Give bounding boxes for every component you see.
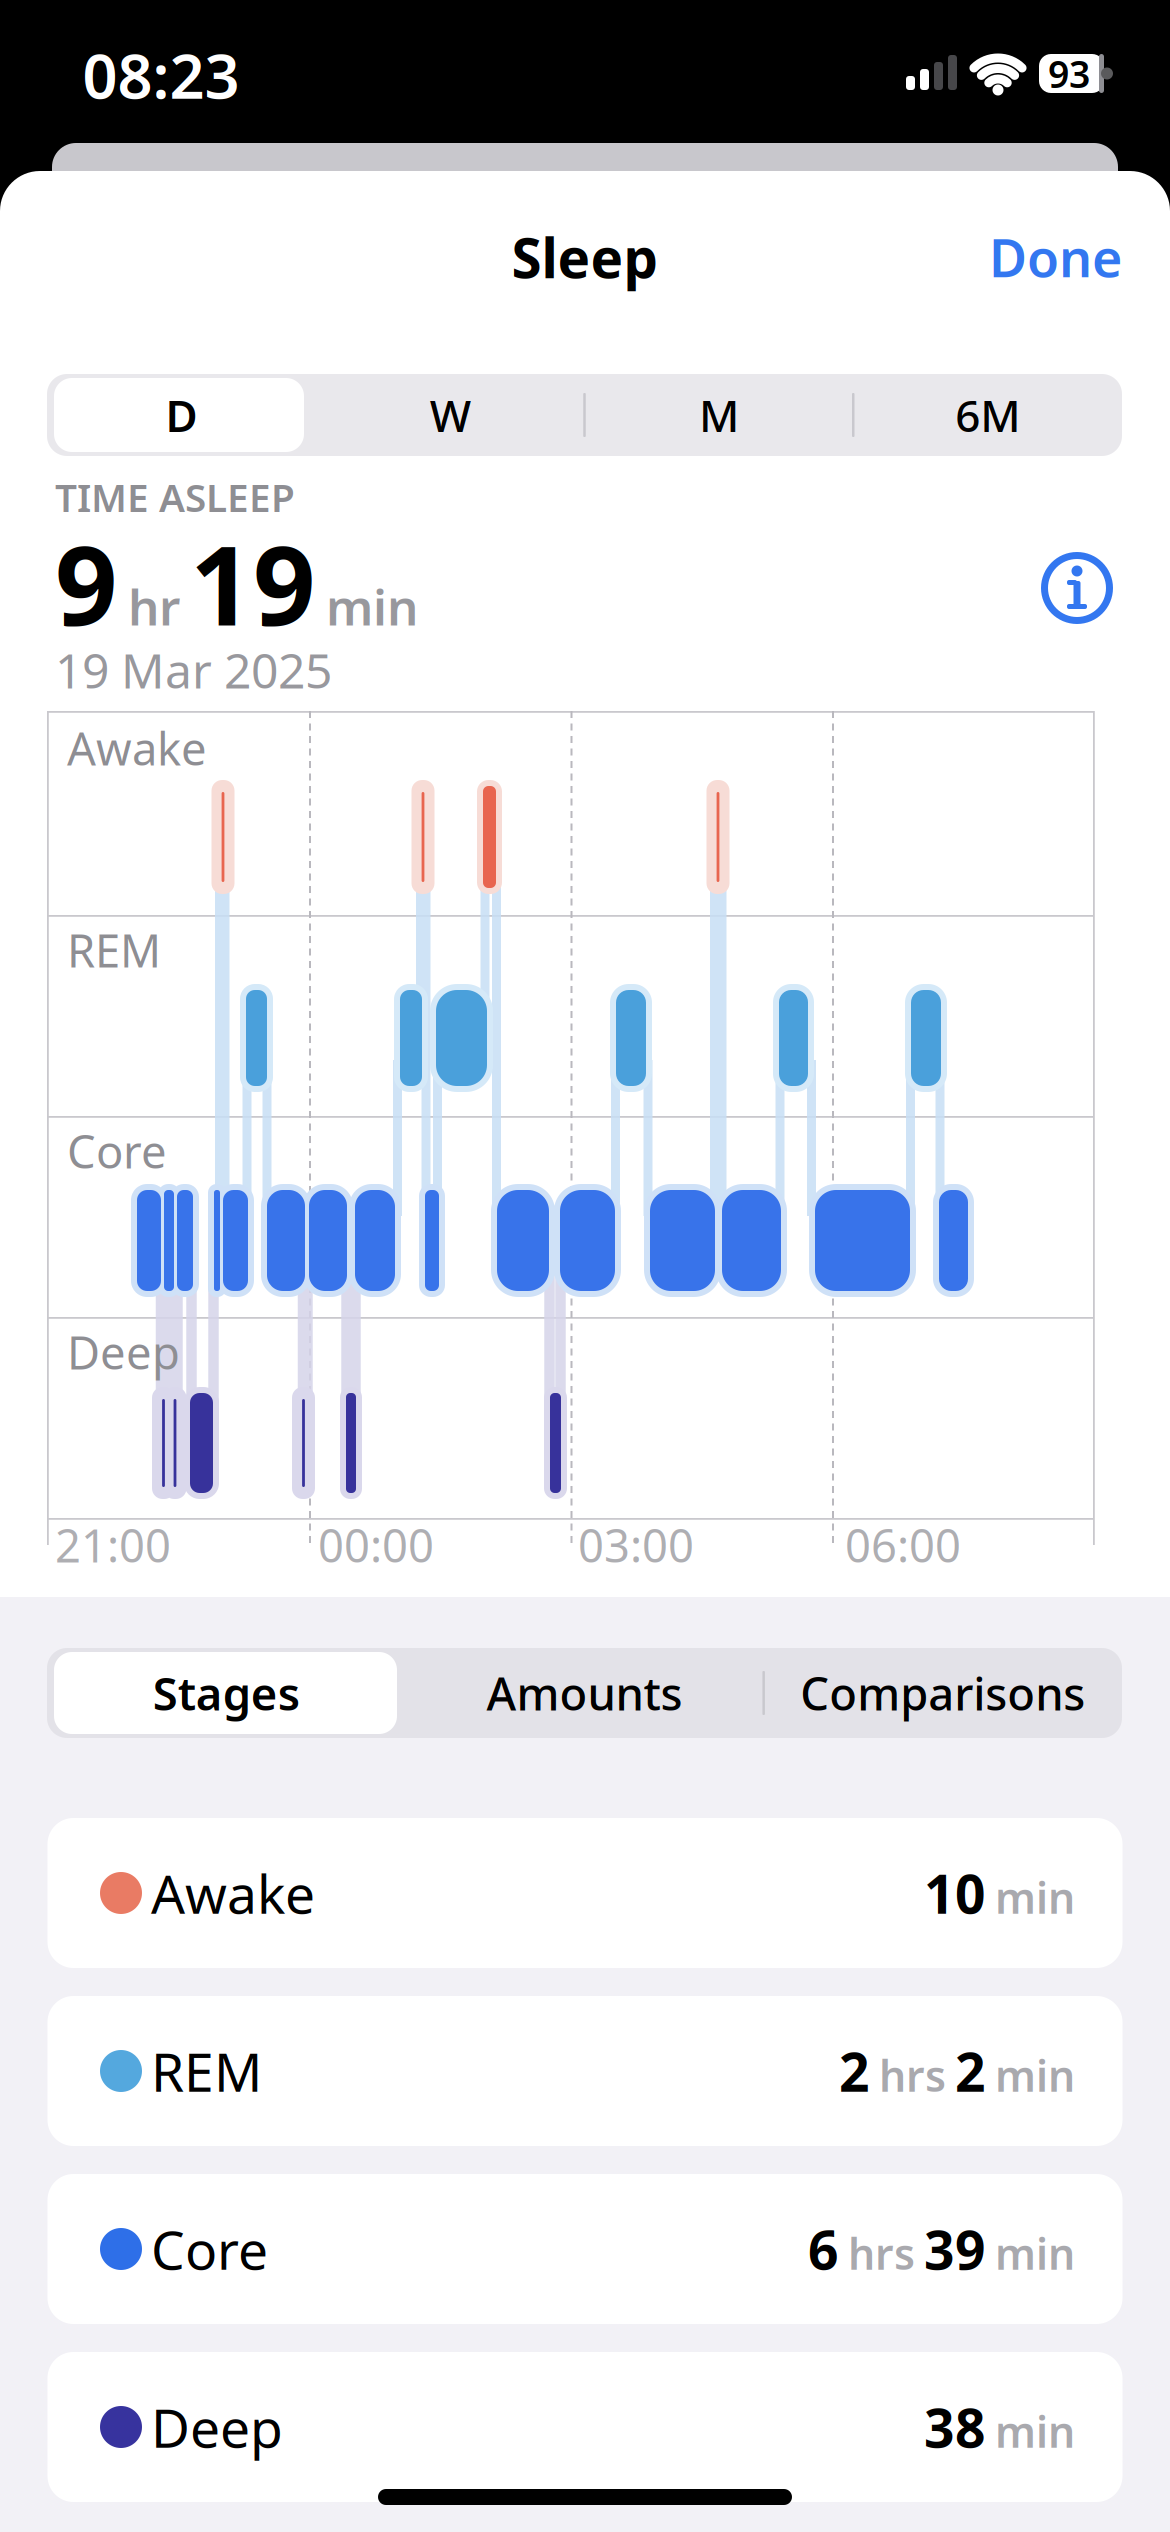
staticText: 08:23 [82,34,239,116]
staticText: 03:00 [578,1515,694,1575]
staticText: Comparisons [800,1663,1085,1723]
staticText: REM [67,920,161,980]
staticText: hrs [879,2047,946,2103]
staticText: 93 [1048,49,1090,98]
staticText: hr [128,573,180,639]
staticText: Stages [153,1663,300,1723]
staticText: hrs [848,2225,915,2281]
staticText: 21:00 [55,1515,171,1575]
button[interactable]: W [316,374,585,456]
staticText: Awake [151,1858,315,1928]
staticText: 2 [839,2036,870,2106]
staticText: min [995,2047,1075,2103]
button[interactable]: D [47,374,316,456]
button[interactable]: Stages [47,1648,405,1738]
staticText: Done [989,222,1122,292]
staticText: 39 [924,2214,986,2284]
staticText: 38 [924,2392,986,2462]
staticText: Core [67,1121,167,1181]
button[interactable]: M [584,374,853,456]
button[interactable]: More information [1041,552,1113,624]
staticText: 2 [955,2036,986,2106]
staticText: 10 [924,1858,986,1928]
staticText: D [165,386,197,444]
staticText: Sleep [511,221,658,293]
button[interactable]: 6M [853,374,1122,456]
staticText: min [326,573,418,639]
staticText: Core [151,2214,268,2284]
staticText: M [699,386,739,444]
staticText: W [430,386,471,444]
button[interactable]: Comparisons [764,1648,1122,1738]
staticText: 6M [955,386,1020,444]
button[interactable]: Done [822,222,1122,292]
staticText: Awake [67,718,207,778]
button[interactable]: Amounts [405,1648,764,1738]
staticText: 19 [190,510,316,656]
staticText: min [995,1869,1075,1925]
staticText: min [995,2225,1075,2281]
staticText: 6 [808,2214,839,2284]
staticText: REM [151,2036,262,2106]
staticText: Deep [151,2392,283,2462]
staticText: Amounts [486,1663,682,1723]
staticText: min [995,2403,1075,2459]
staticText: 19 Mar 2025 [55,638,332,702]
staticText: TIME ASLEEP [55,471,295,523]
staticText: 06:00 [845,1515,961,1575]
staticText: 00:00 [318,1515,434,1575]
staticText: 9 [55,510,118,656]
staticText: Deep [67,1322,180,1382]
